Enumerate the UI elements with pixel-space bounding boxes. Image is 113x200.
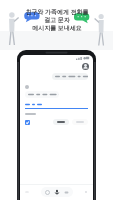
button[interactable] bbox=[25, 91, 59, 98]
button[interactable] bbox=[72, 119, 88, 125]
button[interactable]: Settings bbox=[64, 190, 69, 195]
button[interactable]: Voice input bbox=[54, 189, 60, 195]
button[interactable]: Checkbox bbox=[25, 120, 30, 125]
button[interactable]: More options bbox=[83, 189, 89, 195]
button[interactable] bbox=[52, 73, 88, 80]
button[interactable]: Back bbox=[24, 189, 30, 195]
button[interactable] bbox=[53, 119, 69, 125]
staticText: 친구와 가족에게 전화를 걸고 문자 메시지를 보내세요 bbox=[12, 8, 102, 32]
button[interactable]: Contact avatar bbox=[82, 63, 89, 70]
button[interactable]: Emoji bbox=[45, 190, 50, 195]
